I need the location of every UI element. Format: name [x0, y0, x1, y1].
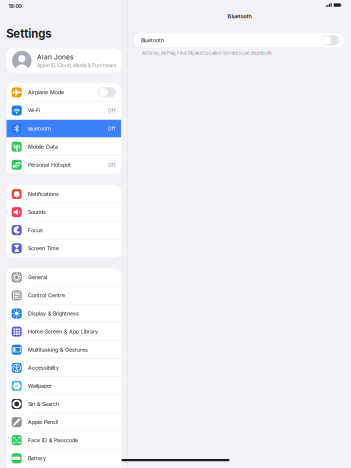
staticText: Siri & Search: [28, 401, 59, 407]
staticText: Accessibility: [28, 365, 59, 371]
button[interactable]: Screen Time: [6, 239, 121, 257]
staticText: Battery: [28, 455, 46, 462]
button[interactable]: Accessibility: [6, 359, 121, 377]
staticText: Airplane Mode: [28, 89, 64, 96]
staticText: Bluetooth: [141, 37, 164, 44]
staticText: Bluetooth: [227, 13, 251, 20]
button[interactable]: Battery: [6, 449, 121, 467]
staticText: Bluetooth: [28, 125, 51, 132]
staticText: Screen Time: [28, 245, 59, 252]
staticText: Off: [108, 107, 116, 114]
staticText: Personal Hotspot: [28, 162, 71, 168]
button[interactable]: Sounds: [6, 203, 121, 221]
button[interactable]: Control Centre: [6, 287, 121, 304]
button[interactable]: Alan Jones: [6, 49, 121, 73]
staticText: Alan Jones: [37, 53, 74, 61]
staticText: Wi-Fi: [28, 107, 40, 114]
staticText: Settings: [6, 27, 51, 40]
button[interactable]: Siri & Search: [6, 395, 121, 413]
staticText: Display & Brightness: [28, 310, 79, 317]
button[interactable]: Bluetooth: [6, 120, 121, 137]
staticText: Off: [108, 125, 116, 132]
staticText: Wallpaper: [28, 383, 52, 389]
staticText: Apple ID, iCloud, Media & Purchases: [37, 63, 116, 68]
button[interactable]: Personal Hotspot: [6, 156, 121, 174]
staticText: Multitasking & Gestures: [28, 346, 88, 353]
button[interactable]: Mobile Data: [6, 138, 121, 155]
staticText: Focus: [28, 227, 43, 233]
button[interactable]: Face ID & Passcode: [6, 431, 121, 449]
staticText: General: [28, 274, 47, 281]
staticText: AirDrop, AirPlay, Find My and Location S…: [142, 51, 273, 56]
button[interactable]: Airplane Mode: [6, 84, 121, 101]
staticText: Notifications: [28, 191, 59, 197]
button[interactable]: Focus: [6, 221, 121, 239]
button[interactable]: Display & Brightness: [6, 305, 121, 322]
staticText: Face ID & Passcode: [28, 437, 78, 443]
staticText: Mobile Data: [28, 143, 58, 150]
staticText: Home Screen & App Library: [28, 328, 98, 335]
button[interactable]: Notifications: [6, 185, 121, 203]
button[interactable]: Wi-Fi: [6, 102, 121, 119]
staticText: Sounds: [28, 209, 46, 215]
staticText: Apple Pencil: [28, 419, 58, 425]
button[interactable]: Home Screen & App Library: [6, 323, 121, 340]
button[interactable]: General: [6, 268, 121, 286]
button[interactable]: Wallpaper: [6, 377, 121, 395]
staticText: Control Centre: [28, 292, 65, 299]
button[interactable]: Multitasking & Gestures: [6, 341, 121, 358]
staticText: 19:00: [8, 3, 21, 9]
staticText: Off: [108, 162, 116, 168]
button[interactable]: Apple Pencil: [6, 413, 121, 431]
button[interactable]: Bluetooth: [209, 11, 269, 21]
